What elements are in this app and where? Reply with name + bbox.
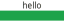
staticText: hello xyxy=(22,0,41,11)
